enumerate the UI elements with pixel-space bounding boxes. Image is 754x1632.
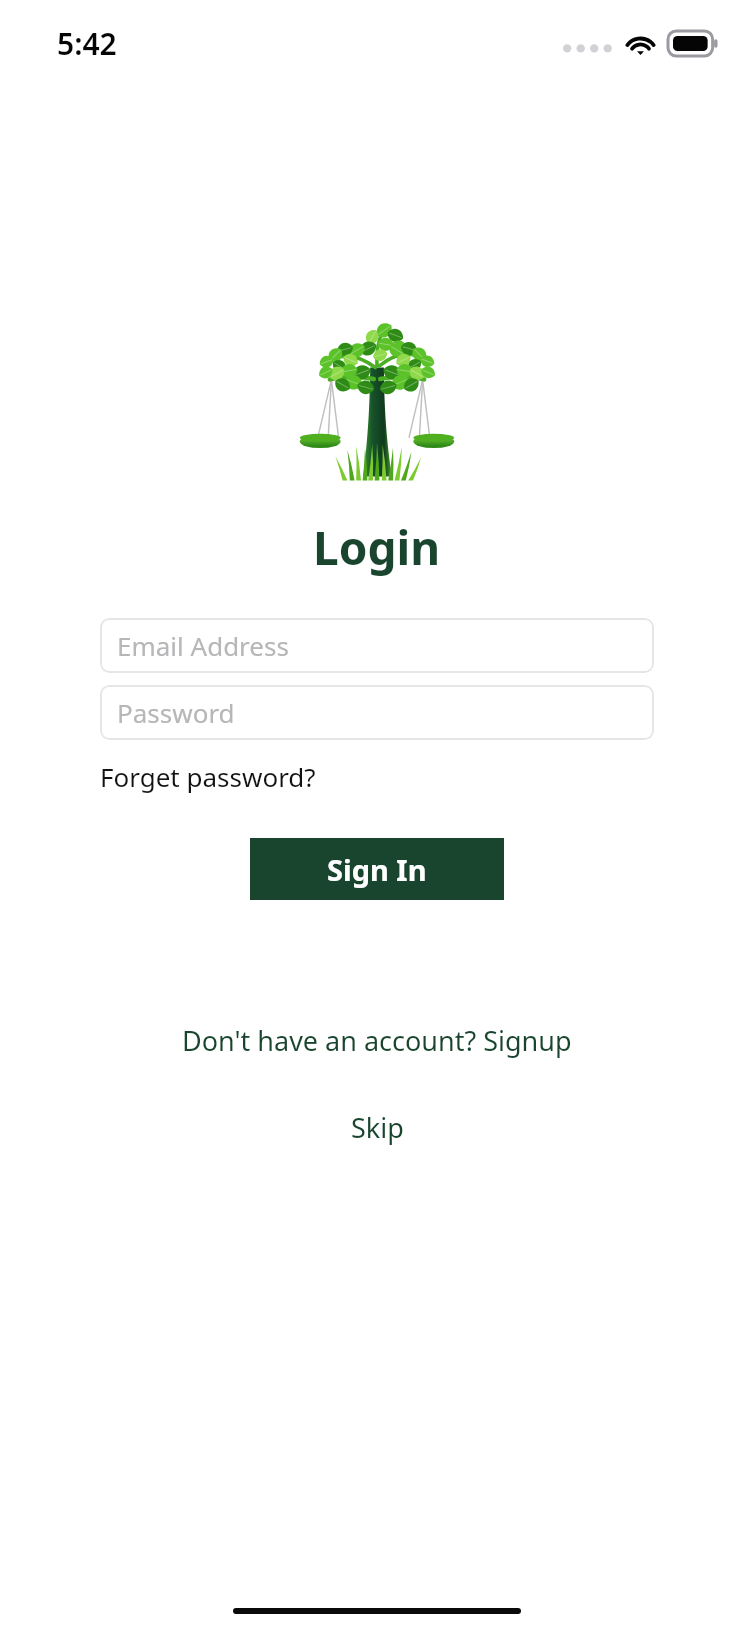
- staticText: Email Address: [117, 628, 289, 663]
- button[interactable]: Forget password?: [100, 757, 316, 796]
- staticText: Password: [117, 695, 235, 730]
- button[interactable]: Skip: [341, 1105, 414, 1150]
- button[interactable]: Sign In: [250, 838, 504, 900]
- button[interactable]: Password: [100, 685, 654, 740]
- button[interactable]: Don't have an account? Signup: [176, 1018, 578, 1063]
- staticText: Login: [313, 516, 441, 579]
- other: App logo: [297, 318, 457, 483]
- staticText: Skip: [351, 1109, 404, 1146]
- button[interactable]: Email Address: [100, 618, 654, 673]
- staticText: Sign In: [327, 850, 427, 889]
- staticText: Don't have an account? Signup: [182, 1022, 572, 1059]
- staticText: Forget password?: [100, 759, 316, 794]
- staticText: 5:42: [57, 23, 117, 64]
